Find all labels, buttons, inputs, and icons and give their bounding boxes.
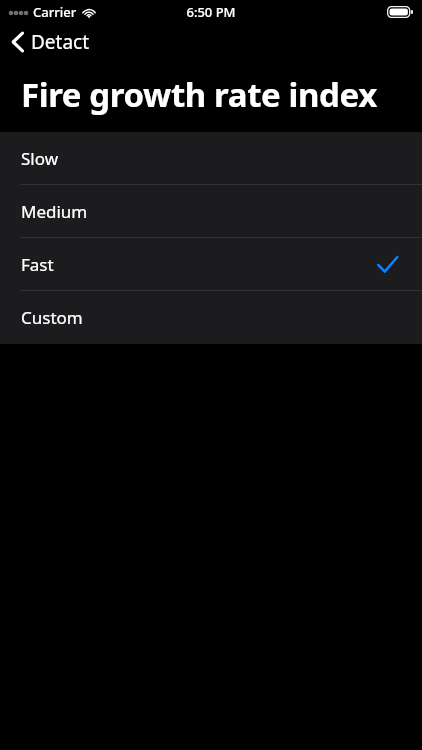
- button[interactable]: Detact: [0, 24, 422, 60]
- staticText: Medium: [21, 200, 88, 223]
- button[interactable]: Slow: [0, 132, 422, 185]
- staticText: Fast: [21, 253, 54, 276]
- staticText: Custom: [21, 306, 83, 329]
- staticText: Slow: [21, 147, 59, 170]
- staticText: 6:50 PM: [186, 3, 236, 21]
- button[interactable]: Medium: [0, 185, 422, 238]
- staticText: Fire growth rate index: [21, 72, 377, 117]
- button[interactable]: Custom: [0, 291, 422, 344]
- staticText: Carrier: [33, 3, 77, 21]
- button[interactable]: Fast: [0, 238, 422, 291]
- staticText: Detact: [31, 29, 90, 55]
